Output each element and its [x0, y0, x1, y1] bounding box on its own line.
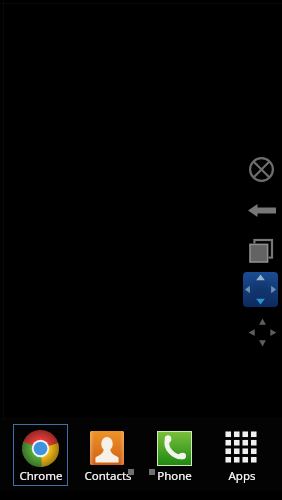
button[interactable]: Chrome	[13, 424, 68, 486]
button[interactable]: Close	[245, 153, 277, 185]
staticText: Chrome	[19, 468, 63, 484]
button[interactable]: Move	[246, 316, 278, 348]
staticText: Apps	[228, 468, 256, 484]
button[interactable]: Back	[244, 198, 279, 222]
button[interactable]: Contacts	[80, 424, 135, 486]
button[interactable]: Recent apps	[245, 235, 277, 267]
button[interactable]: Directional pad	[243, 272, 278, 307]
button[interactable]: Apps	[214, 424, 269, 486]
staticText: Contacts	[84, 468, 132, 484]
staticText: Phone	[157, 468, 192, 484]
button[interactable]: Phone	[147, 424, 202, 486]
